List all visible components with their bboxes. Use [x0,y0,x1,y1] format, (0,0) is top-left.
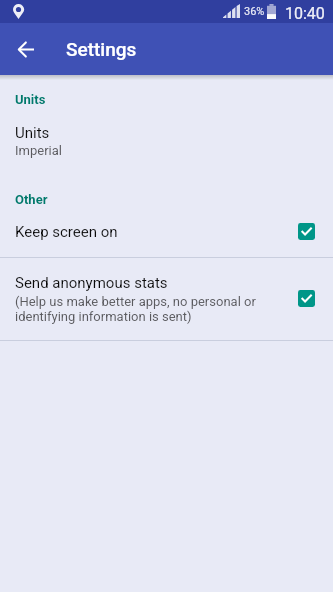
staticText: Keep screen on [15,223,118,241]
staticText: Units [15,124,50,142]
button[interactable]: Send anonymous stats, checked [298,290,315,307]
button[interactable]: Units [0,114,333,166]
staticText: Send anonymous stats [15,274,168,292]
other: Battery 36 percent [267,4,276,19]
button[interactable]: Keep screen on, checked [298,223,315,240]
staticText: 36% [244,5,265,18]
button[interactable]: Navigate up [4,27,48,71]
button[interactable]: Send anonymous stats [0,258,333,340]
staticText: Imperial [15,143,62,158]
staticText: Settings [66,38,137,60]
staticText: (Help us make better apps, no personal o… [15,294,256,324]
button[interactable]: Keep screen on [0,212,333,257]
other: Mobile signal [223,4,240,18]
other: Location active [13,4,24,19]
staticText: Units [15,92,46,107]
staticText: Other [15,192,48,207]
staticText: 10:40 [285,4,325,23]
